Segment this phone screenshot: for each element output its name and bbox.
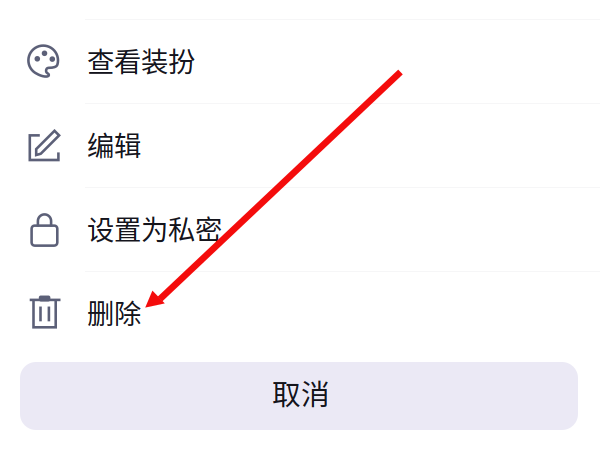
button[interactable]: 取消 xyxy=(20,362,578,430)
staticText: 取消 xyxy=(272,372,330,413)
staticText: 设置为私密 xyxy=(87,208,222,248)
staticText: 编辑 xyxy=(87,124,141,164)
staticText: 删除 xyxy=(87,292,141,332)
button[interactable]: 编辑 xyxy=(0,104,600,187)
staticText: 查看装扮 xyxy=(87,40,195,80)
button[interactable]: 设置为私密 xyxy=(0,188,600,271)
button[interactable]: 查看装扮 xyxy=(0,20,600,103)
button[interactable]: 删除 xyxy=(0,272,600,355)
